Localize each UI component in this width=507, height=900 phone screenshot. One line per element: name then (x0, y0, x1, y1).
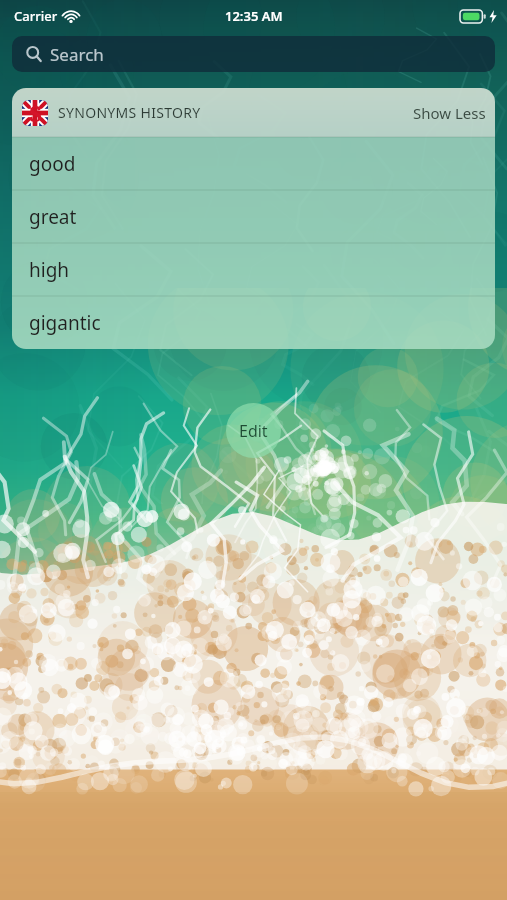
button[interactable]: gigantic (12, 296, 495, 349)
staticText: SYNONYMS HISTORY (58, 103, 201, 122)
staticText: gigantic (29, 310, 101, 336)
button[interactable]: high (12, 243, 495, 296)
button[interactable]: Show Less (413, 103, 486, 123)
staticText: Carrier (14, 7, 58, 25)
staticText: Edit (239, 420, 268, 442)
button[interactable]: S (12, 88, 495, 137)
staticText: high (29, 257, 70, 283)
button[interactable]: Search (12, 36, 495, 72)
staticText: great (29, 204, 77, 230)
staticText: good (29, 151, 76, 177)
staticText: S (29, 100, 42, 126)
staticText: Search (50, 43, 104, 66)
button[interactable]: great (12, 190, 495, 243)
button[interactable]: good (12, 137, 495, 190)
staticText: 12:35 AM (225, 7, 283, 25)
button[interactable]: Edit (226, 403, 281, 458)
